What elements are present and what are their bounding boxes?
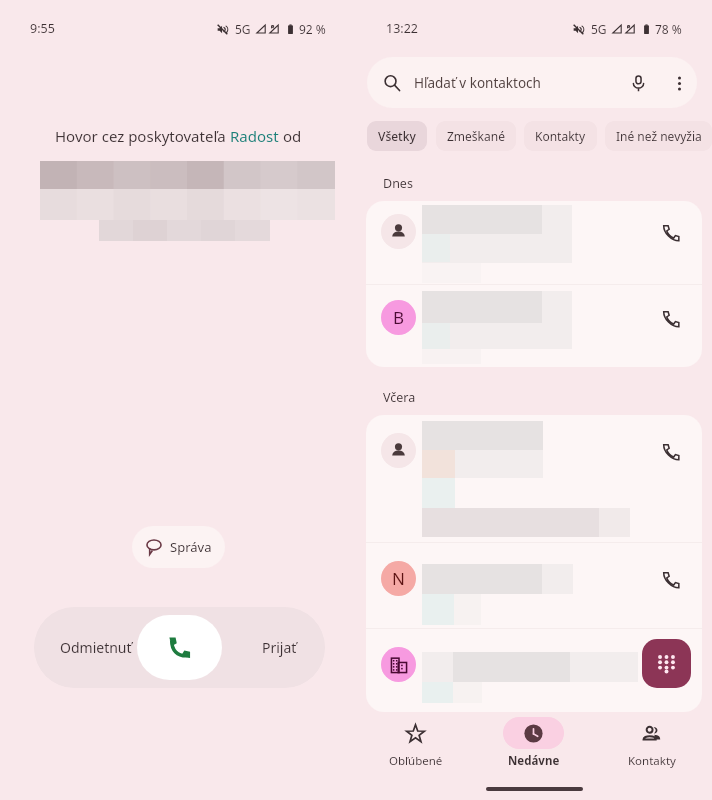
staticText: N <box>392 567 405 590</box>
button[interactable]: Prijať <box>222 607 325 688</box>
button[interactable]: Správa <box>132 526 225 568</box>
button[interactable]: Call <box>366 415 702 542</box>
button[interactable]: Voice search <box>625 70 651 96</box>
button[interactable]: Iné než nevyžiadané <box>605 121 712 151</box>
button[interactable]: Zmeškané <box>436 121 516 151</box>
button[interactable]: Call <box>652 214 688 250</box>
staticText: Prijať <box>262 638 297 657</box>
staticText: Kontakty <box>535 128 586 144</box>
button[interactable]: Call <box>652 561 688 597</box>
staticText: Obľúbené <box>389 753 443 769</box>
button[interactable]: Kontakty <box>592 713 710 786</box>
staticText: Zmeškané <box>447 128 505 144</box>
staticText: 92 % <box>299 21 326 37</box>
staticText: Hľadať v kontaktoch <box>414 74 541 92</box>
staticText: Správa <box>170 538 212 556</box>
button[interactable]: Call <box>366 201 702 284</box>
staticText: Nedávne <box>508 753 560 769</box>
staticText: 5G <box>235 21 251 37</box>
button[interactable]: Nedávne <box>474 713 592 786</box>
staticText: 13:22 <box>386 20 418 37</box>
button[interactable]: Call <box>652 433 688 469</box>
button[interactable]: Answer call <box>137 615 222 680</box>
button[interactable]: N <box>366 543 702 628</box>
button[interactable]: Dialpad <box>642 639 691 688</box>
button[interactable]: Všetky <box>367 121 427 151</box>
staticText: 9:55 <box>30 20 55 37</box>
staticText: Odmietnuť <box>60 638 132 657</box>
staticText: Hovor cez poskytovateľa <box>55 126 230 146</box>
button[interactable]: Call <box>366 629 702 712</box>
button[interactable]: Obľúbené <box>356 713 474 786</box>
button[interactable]: B <box>366 285 702 367</box>
staticText: B <box>393 306 405 329</box>
staticText: od <box>279 126 302 146</box>
staticText: Kontakty <box>628 753 676 769</box>
staticText: Iné než nevyžiadané <box>616 128 701 144</box>
button[interactable]: Call <box>652 647 688 683</box>
staticText: Všetky <box>378 128 416 144</box>
button[interactable]: More options <box>666 70 692 96</box>
button[interactable]: Hľadať v kontaktoch <box>367 57 697 108</box>
staticText: 5G <box>591 21 607 37</box>
button[interactable]: Call <box>652 300 688 336</box>
staticText: 78 % <box>655 21 682 37</box>
staticText: Dnes <box>383 175 413 192</box>
staticText: Radost <box>230 126 279 146</box>
button[interactable]: Kontakty <box>524 121 597 151</box>
button[interactable]: Odmietnuť <box>34 607 137 688</box>
staticText: Včera <box>383 389 416 406</box>
